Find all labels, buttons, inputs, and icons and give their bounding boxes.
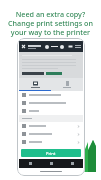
button[interactable]: Home xyxy=(41,159,62,168)
button[interactable] xyxy=(19,99,83,107)
button[interactable] xyxy=(19,52,83,78)
button[interactable]: Back xyxy=(19,159,41,168)
button[interactable]: Zoom out xyxy=(45,45,49,49)
button[interactable]: Print xyxy=(68,44,73,49)
button[interactable] xyxy=(19,107,83,115)
button[interactable]: Zoom in xyxy=(60,45,64,49)
button[interactable] xyxy=(19,122,83,130)
staticText: Print xyxy=(46,151,56,156)
button[interactable] xyxy=(19,138,83,146)
button[interactable] xyxy=(19,91,83,99)
button[interactable] xyxy=(19,78,51,91)
button[interactable] xyxy=(19,130,83,138)
button[interactable]: Print xyxy=(21,149,81,157)
button[interactable]: Close xyxy=(21,44,26,49)
staticText: Need an extra copy? Change print setting… xyxy=(8,9,93,37)
button[interactable]: Close xyxy=(19,41,83,52)
button[interactable]: Recents xyxy=(62,159,83,168)
button[interactable] xyxy=(51,78,83,91)
